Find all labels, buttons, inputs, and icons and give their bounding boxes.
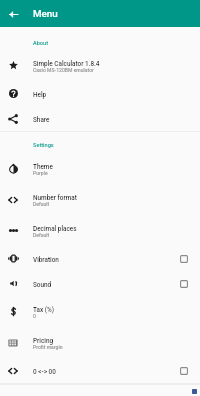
staticText: Vibration: [33, 256, 59, 264]
staticText: Simple Calculator 1.8.4: [33, 60, 100, 68]
button[interactable]: Decimal places: [0, 215, 200, 246]
button[interactable]: Sound: [0, 271, 200, 296]
staticText: Profit margin: [33, 344, 63, 350]
button[interactable]: Facebook: [192, 389, 197, 394]
staticText: Sound: [33, 281, 52, 289]
staticText: Decimal places: [33, 225, 77, 233]
button[interactable]: Pricing: [0, 327, 200, 358]
button[interactable]: Simple Calculator 1.8.4: [0, 50, 200, 81]
button[interactable]: Theme: [0, 153, 200, 184]
staticText: Theme: [33, 163, 53, 171]
staticText: Default: [33, 201, 50, 207]
staticText: Tax (%): [33, 306, 54, 314]
button[interactable]: Tax (%): [0, 296, 200, 327]
button[interactable]: Back: [4, 5, 22, 23]
staticText: 0 <-> 00: [33, 368, 56, 376]
staticText: About: [33, 40, 49, 47]
staticText: Settings: [33, 142, 54, 149]
button[interactable]: 0 <-> 00: [0, 358, 200, 383]
staticText: Menu: [33, 8, 58, 19]
staticText: 0: [33, 313, 36, 319]
staticText: Share: [33, 116, 50, 124]
staticText: Number format: [33, 194, 77, 202]
staticText: Purple: [33, 170, 48, 176]
button[interactable]: Help: [0, 81, 200, 106]
staticText: Help: [33, 91, 47, 99]
staticText: Casio MS-120BM emulator: [33, 67, 94, 73]
staticText: Default: [33, 232, 50, 238]
staticText: Pricing: [33, 337, 54, 345]
button[interactable]: Number format: [0, 184, 200, 215]
button[interactable]: Share: [0, 106, 200, 131]
button[interactable]: Vibration: [0, 246, 200, 271]
